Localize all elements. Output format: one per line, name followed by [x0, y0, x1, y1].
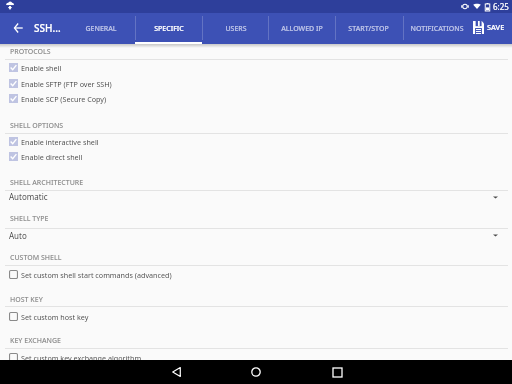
staticText: GENERAL: [85, 24, 117, 34]
button[interactable]: Navigate up: [5, 12, 31, 43]
staticText: Auto: [9, 230, 27, 241]
staticText: Set custom key exchange algorithm: [21, 353, 142, 363]
staticText: SHELL ARCHITECTURE: [10, 178, 84, 188]
button[interactable]: GENERAL: [67, 13, 134, 44]
staticText: PROTOCOLS: [10, 47, 51, 57]
button[interactable]: Home: [236, 360, 276, 384]
staticText: Enable direct shell: [21, 152, 83, 162]
button[interactable]: Set custom host key: [0, 309, 512, 324]
staticText: Set custom host key: [21, 312, 89, 322]
staticText: 6:25: [493, 1, 509, 12]
staticText: SSH...: [34, 21, 61, 35]
button[interactable]: Enable direct shell: [0, 149, 512, 164]
staticText: Enable shell: [21, 63, 62, 73]
button[interactable]: Back: [156, 360, 196, 384]
staticText: Enable SFTP (FTP over SSH): [21, 79, 112, 89]
button[interactable]: USERS: [202, 13, 269, 44]
staticText: SHELL OPTIONS: [10, 121, 64, 131]
button[interactable]: START/STOP: [335, 13, 402, 44]
staticText: SAVE: [487, 22, 505, 32]
staticText: Enable interactive shell: [21, 137, 99, 147]
staticText: HOST KEY: [10, 295, 43, 305]
button[interactable]: ALLOWED IP: [268, 13, 335, 44]
button[interactable]: Auto: [0, 224, 512, 247]
staticText: Enable SCP (Secure Copy): [21, 94, 107, 104]
staticText: START/STOP: [348, 24, 389, 34]
button[interactable]: Automatic: [0, 185, 512, 208]
staticText: NOTIFICATIONS: [410, 24, 464, 34]
button[interactable]: Set custom key exchange algorithm: [0, 350, 512, 365]
staticText: SPECIFIC: [154, 24, 184, 34]
button[interactable]: Enable SFTP (FTP over SSH): [0, 76, 512, 91]
staticText: SHELL TYPE: [10, 214, 49, 224]
staticText: Set custom shell start commands (advance…: [21, 270, 172, 280]
button[interactable]: SPECIFIC: [135, 13, 202, 44]
staticText: USERS: [225, 24, 247, 34]
staticText: Automatic: [9, 191, 48, 202]
button[interactable]: Enable shell: [0, 60, 512, 75]
staticText: ALLOWED IP: [281, 24, 323, 34]
button[interactable]: Recent apps: [317, 360, 357, 384]
button[interactable]: SAVE: [469, 13, 512, 44]
button[interactable]: Set custom shell start commands (advance…: [0, 267, 512, 282]
staticText: CUSTOM SHELL: [10, 253, 62, 263]
staticText: KEY EXCHANGE: [10, 336, 61, 346]
button[interactable]: NOTIFICATIONS: [403, 13, 470, 44]
button[interactable]: Enable interactive shell: [0, 134, 512, 149]
button[interactable]: Enable SCP (Secure Copy): [0, 91, 512, 106]
